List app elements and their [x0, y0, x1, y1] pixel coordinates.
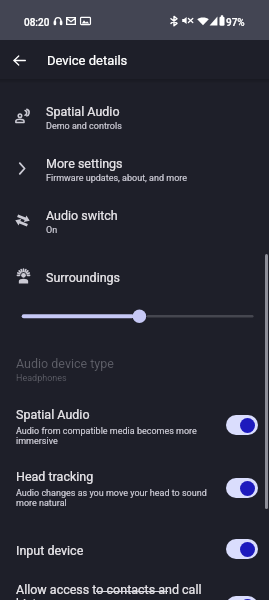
button[interactable]: Audio switch — [0, 198, 269, 244]
button[interactable]: Spatial Audio — [0, 399, 269, 439]
button[interactable]: More settings — [0, 146, 269, 192]
staticText: Allow access to contacts and call histor… — [16, 582, 218, 600]
button[interactable]: Surroundings level — [0, 306, 269, 328]
staticText: Headphones — [16, 373, 67, 384]
staticText: Device details — [47, 53, 128, 68]
button[interactable]: Head tracking — [0, 461, 269, 501]
button[interactable]: Toggle Head tracking — [226, 478, 258, 498]
staticText: Demo and controls — [46, 121, 122, 132]
button[interactable]: Spatial Audio — [0, 94, 269, 140]
button[interactable]: Allow access to contacts and call histor… — [0, 574, 269, 600]
staticText: Firmware updates, about, and more — [46, 173, 188, 184]
staticText: Spatial Audio — [46, 104, 120, 119]
staticText: Audio device type — [16, 356, 114, 371]
staticText: Head tracking — [16, 469, 218, 484]
button[interactable]: Toggle Input device — [226, 539, 258, 559]
staticText: Audio from compatible media becomes more… — [16, 426, 218, 446]
button[interactable]: Input device — [0, 535, 269, 575]
staticText: Input device — [16, 543, 218, 558]
staticText: Spatial Audio — [16, 407, 218, 422]
button[interactable]: Surroundings — [0, 262, 269, 292]
staticText: 08:20 — [24, 17, 50, 29]
staticText: Audio switch — [46, 208, 118, 223]
staticText: Surroundings — [46, 270, 121, 285]
staticText: Audio changes as you move your head to s… — [16, 488, 218, 508]
button[interactable]: Toggle Allow access to contacts and call… — [226, 596, 258, 600]
staticText: 97% — [226, 17, 245, 29]
button[interactable]: Toggle Spatial Audio — [226, 415, 258, 435]
staticText: More settings — [46, 156, 123, 171]
staticText: On — [46, 225, 58, 236]
button[interactable]: Back — [5, 46, 33, 74]
